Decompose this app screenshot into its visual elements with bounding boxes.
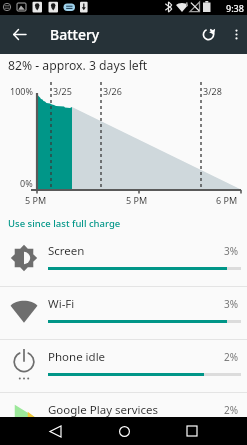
staticText: 2% (224, 403, 239, 417)
button[interactable]: Recents (178, 417, 206, 445)
button[interactable]: Screen (0, 234, 247, 287)
staticText: 3% (224, 297, 239, 311)
staticText: Phone idle (48, 349, 106, 365)
button[interactable]: Home (110, 417, 138, 445)
button[interactable]: Back (0, 15, 38, 54)
staticText: 82% - approx. 3 days left (8, 57, 148, 74)
button[interactable]: Back (41, 417, 69, 445)
staticText: 3/26 (103, 85, 122, 97)
button[interactable]: Google Play services (0, 393, 247, 445)
staticText: 3/28 (203, 85, 222, 97)
staticText: 100% (10, 85, 33, 97)
button[interactable]: Wi-Fi (0, 287, 247, 340)
staticText: Screen (48, 243, 85, 259)
staticText: Battery (50, 25, 100, 44)
staticText: 3/25 (53, 85, 72, 97)
staticText: 0% (20, 177, 33, 189)
staticText: 9:38 (226, 2, 244, 14)
staticText: 5 PM (126, 194, 148, 206)
staticText: Use since last full charge (8, 217, 121, 230)
button[interactable]: More options (225, 15, 247, 54)
staticText: 5 PM (25, 194, 47, 206)
staticText: 6 PM (216, 194, 238, 206)
staticText: Wi-Fi (48, 296, 75, 312)
button[interactable]: Refresh (191, 15, 225, 54)
staticText: 2% (224, 350, 239, 364)
staticText: 3% (224, 244, 239, 258)
staticText: Google Play services (48, 402, 159, 418)
button[interactable]: Phone idle (0, 340, 247, 393)
